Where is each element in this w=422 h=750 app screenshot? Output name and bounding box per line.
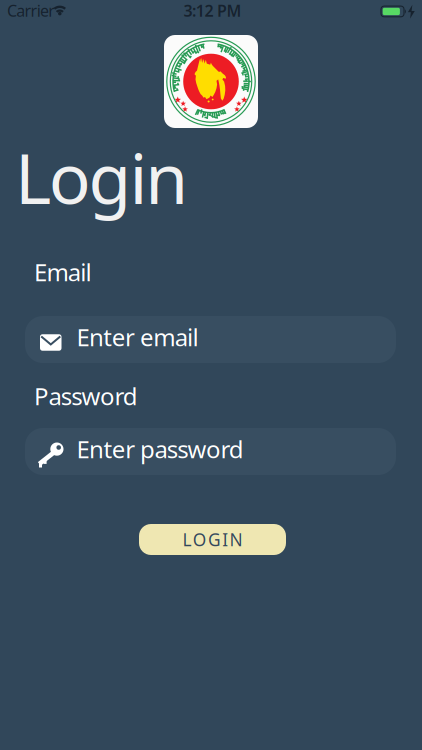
staticText: L <box>183 528 192 551</box>
staticText: I <box>222 528 228 551</box>
button[interactable]: L <box>139 524 286 555</box>
staticText: Password <box>34 380 138 412</box>
button[interactable]: Enter password <box>25 428 396 475</box>
staticText: G <box>208 528 221 551</box>
button[interactable]: Enter email <box>25 316 396 363</box>
staticText: Carrier <box>7 0 55 21</box>
staticText: Email <box>34 256 92 288</box>
staticText: Enter password <box>77 433 244 465</box>
staticText: N <box>229 528 242 551</box>
staticText: Enter email <box>76 321 198 353</box>
staticText: O <box>193 528 207 551</box>
staticText: 3:12 PM <box>183 0 242 21</box>
staticText: Login <box>15 131 188 223</box>
